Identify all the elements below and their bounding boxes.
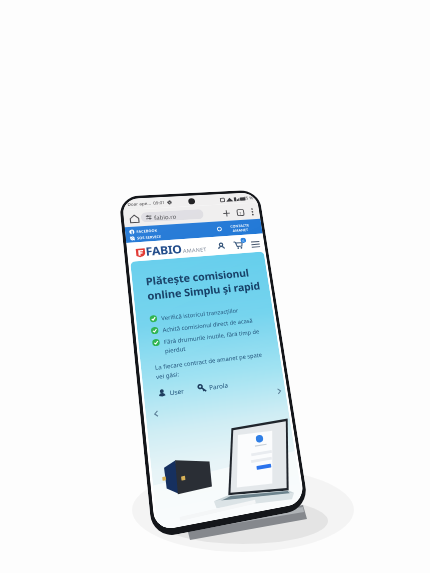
button[interactable]: Next	[130, 213, 140, 223]
